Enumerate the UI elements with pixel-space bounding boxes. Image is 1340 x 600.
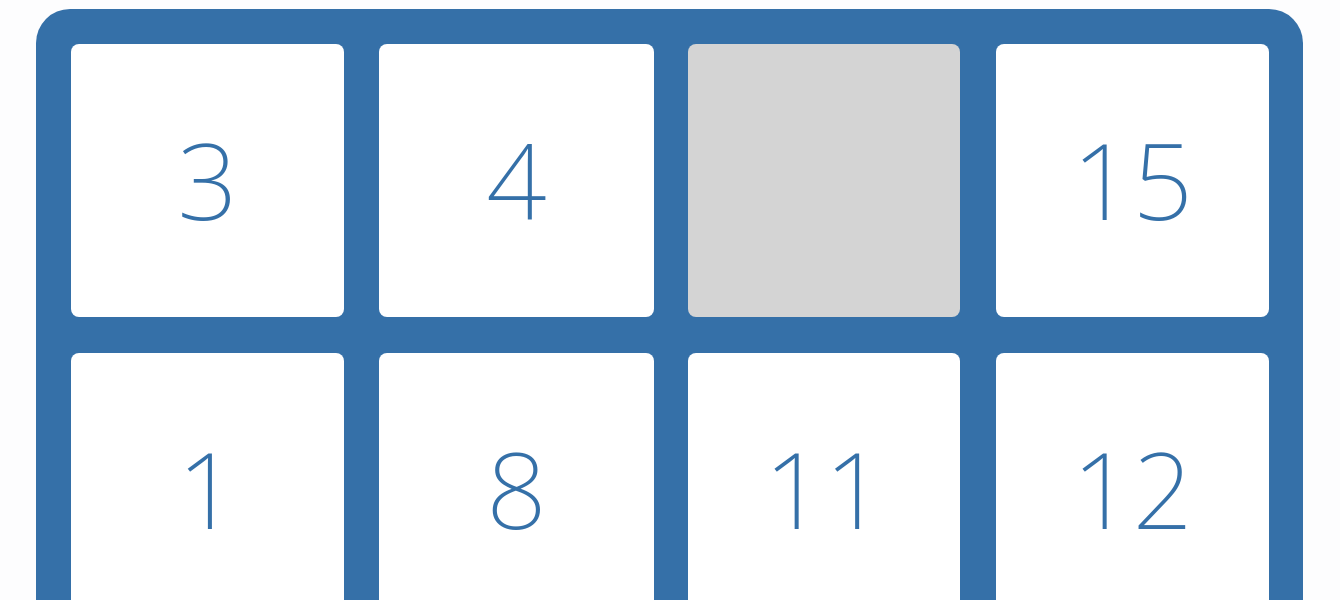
button[interactable]: 11	[688, 353, 960, 600]
button[interactable]: Empty tile slot	[688, 44, 960, 317]
staticText: 4	[486, 107, 547, 251]
staticText: 15	[1072, 107, 1193, 251]
staticText: 11	[764, 416, 885, 560]
button[interactable]: 3	[71, 44, 344, 317]
button[interactable]: 1	[71, 353, 344, 600]
button[interactable]: 12	[996, 353, 1269, 600]
staticText: 8	[486, 416, 547, 560]
button[interactable]: 8	[379, 353, 654, 600]
button[interactable]: 4	[379, 44, 654, 317]
staticText: 3	[177, 107, 238, 251]
staticText: 1	[177, 416, 238, 560]
staticText: 12	[1072, 416, 1193, 560]
button[interactable]: 15	[996, 44, 1269, 317]
